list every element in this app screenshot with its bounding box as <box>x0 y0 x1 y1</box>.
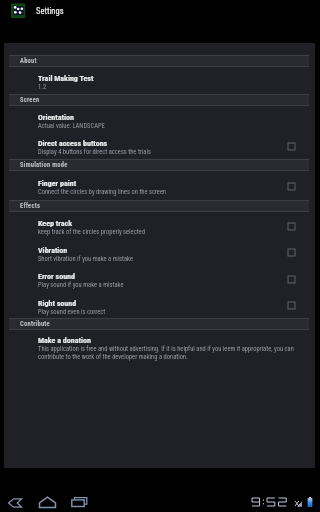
staticText: This application is free and without adv… <box>38 345 299 361</box>
button[interactable]: App icon <box>11 3 64 19</box>
staticText: Contribute <box>20 320 50 328</box>
staticText: Actual value: LANDSCAPE <box>38 122 105 130</box>
staticText: Direct access buttons <box>38 139 108 148</box>
staticText: About <box>20 57 37 65</box>
staticText: Play sound if you make a mistake <box>38 281 124 289</box>
staticText: keep track of the circles properly selec… <box>38 228 145 236</box>
button[interactable]: Back <box>8 498 22 508</box>
button[interactable]: Trail Making Test <box>9 67 309 94</box>
staticText: Simulation mode <box>20 161 68 169</box>
button[interactable]: Finger paint <box>9 171 309 200</box>
staticText: Error sound <box>38 272 76 281</box>
button[interactable]: Finger paint <box>283 178 299 194</box>
staticText: Vibration <box>38 246 68 255</box>
staticText: Finger paint <box>38 179 77 188</box>
staticText: Screen <box>20 96 40 104</box>
button[interactable]: Vibration <box>283 244 299 260</box>
button[interactable]: Right sound <box>283 297 299 313</box>
button[interactable]: Keep track <box>283 218 299 234</box>
staticText: Keep track <box>38 219 73 228</box>
staticText: Settings <box>36 6 64 16</box>
button[interactable]: Keep track <box>9 212 309 239</box>
button[interactable]: Direct access buttons <box>9 132 309 159</box>
staticText: Connect the circles by drawing lines on … <box>38 188 167 196</box>
button[interactable]: Orientation <box>9 106 309 132</box>
button[interactable]: Recent apps <box>71 497 88 508</box>
staticText: Display 4 buttons for direct access the … <box>38 148 151 156</box>
button[interactable]: Error sound <box>283 271 299 287</box>
other: App icon <box>11 3 25 19</box>
staticText: 1.2 <box>38 83 47 91</box>
staticText: Effects <box>20 202 41 210</box>
button[interactable]: Right sound <box>9 292 309 318</box>
staticText: Short vibration if you make a mistake <box>38 255 134 263</box>
staticText: Right sound <box>38 299 77 308</box>
staticText: Play sound even is correct <box>38 308 106 316</box>
button[interactable]: Home <box>39 497 56 508</box>
button[interactable]: Vibration <box>9 239 309 265</box>
button[interactable]: Error sound <box>9 265 309 292</box>
staticText: Make a donation <box>38 336 91 345</box>
staticText: Trail Making Test <box>38 74 94 83</box>
button[interactable]: Direct access buttons <box>283 138 299 154</box>
button[interactable]: Make a donation <box>9 330 309 363</box>
staticText: Orientation <box>38 113 74 122</box>
